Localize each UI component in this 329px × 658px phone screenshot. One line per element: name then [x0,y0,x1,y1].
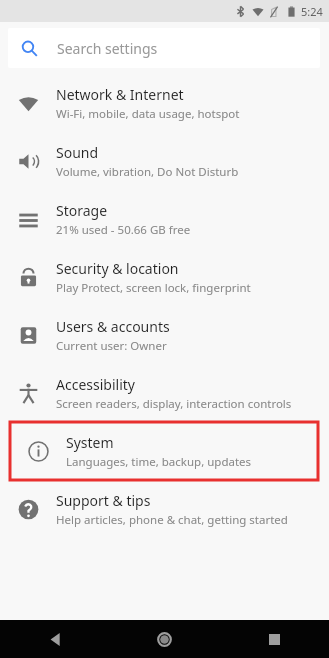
staticText: Network & Internet [56,85,184,104]
staticText: Play Protect, screen lock, fingerprint [56,280,251,296]
staticText: Sound [56,143,99,162]
button[interactable]: Back [38,622,72,656]
staticText: 5:24 [301,4,323,19]
staticText: Help articles, phone & chat, getting sta… [56,512,288,528]
staticText: Search settings [57,39,158,58]
staticText: Languages, time, backup, updates [66,454,252,470]
staticText: Current user: Owner [56,338,167,354]
staticText: System [66,433,114,452]
staticText: Wi-Fi, mobile, data usage, hotspot [56,106,240,122]
button[interactable]: System [10,422,318,480]
button[interactable]: Storage [0,190,329,248]
button[interactable]: Users & accounts [0,306,329,364]
button[interactable]: Accessibility [0,364,329,422]
button[interactable]: Security & location [0,248,329,306]
staticText: Storage [56,201,108,220]
staticText: Support & tips [56,491,151,510]
staticText: 21% used - 50.66 GB free [56,222,191,238]
button[interactable]: Home [147,622,181,656]
button[interactable]: Network & Internet [0,74,329,132]
button[interactable]: Recent apps [257,622,291,656]
button[interactable]: Support & tips [0,480,329,538]
staticText: Users & accounts [56,317,170,336]
button[interactable]: Search settings [8,28,320,68]
staticText: Security & location [56,259,179,278]
staticText: Volume, vibration, Do Not Disturb [56,164,239,180]
staticText: Screen readers, display, interaction con… [56,396,292,412]
staticText: Accessibility [56,375,135,394]
button[interactable]: Sound [0,132,329,190]
